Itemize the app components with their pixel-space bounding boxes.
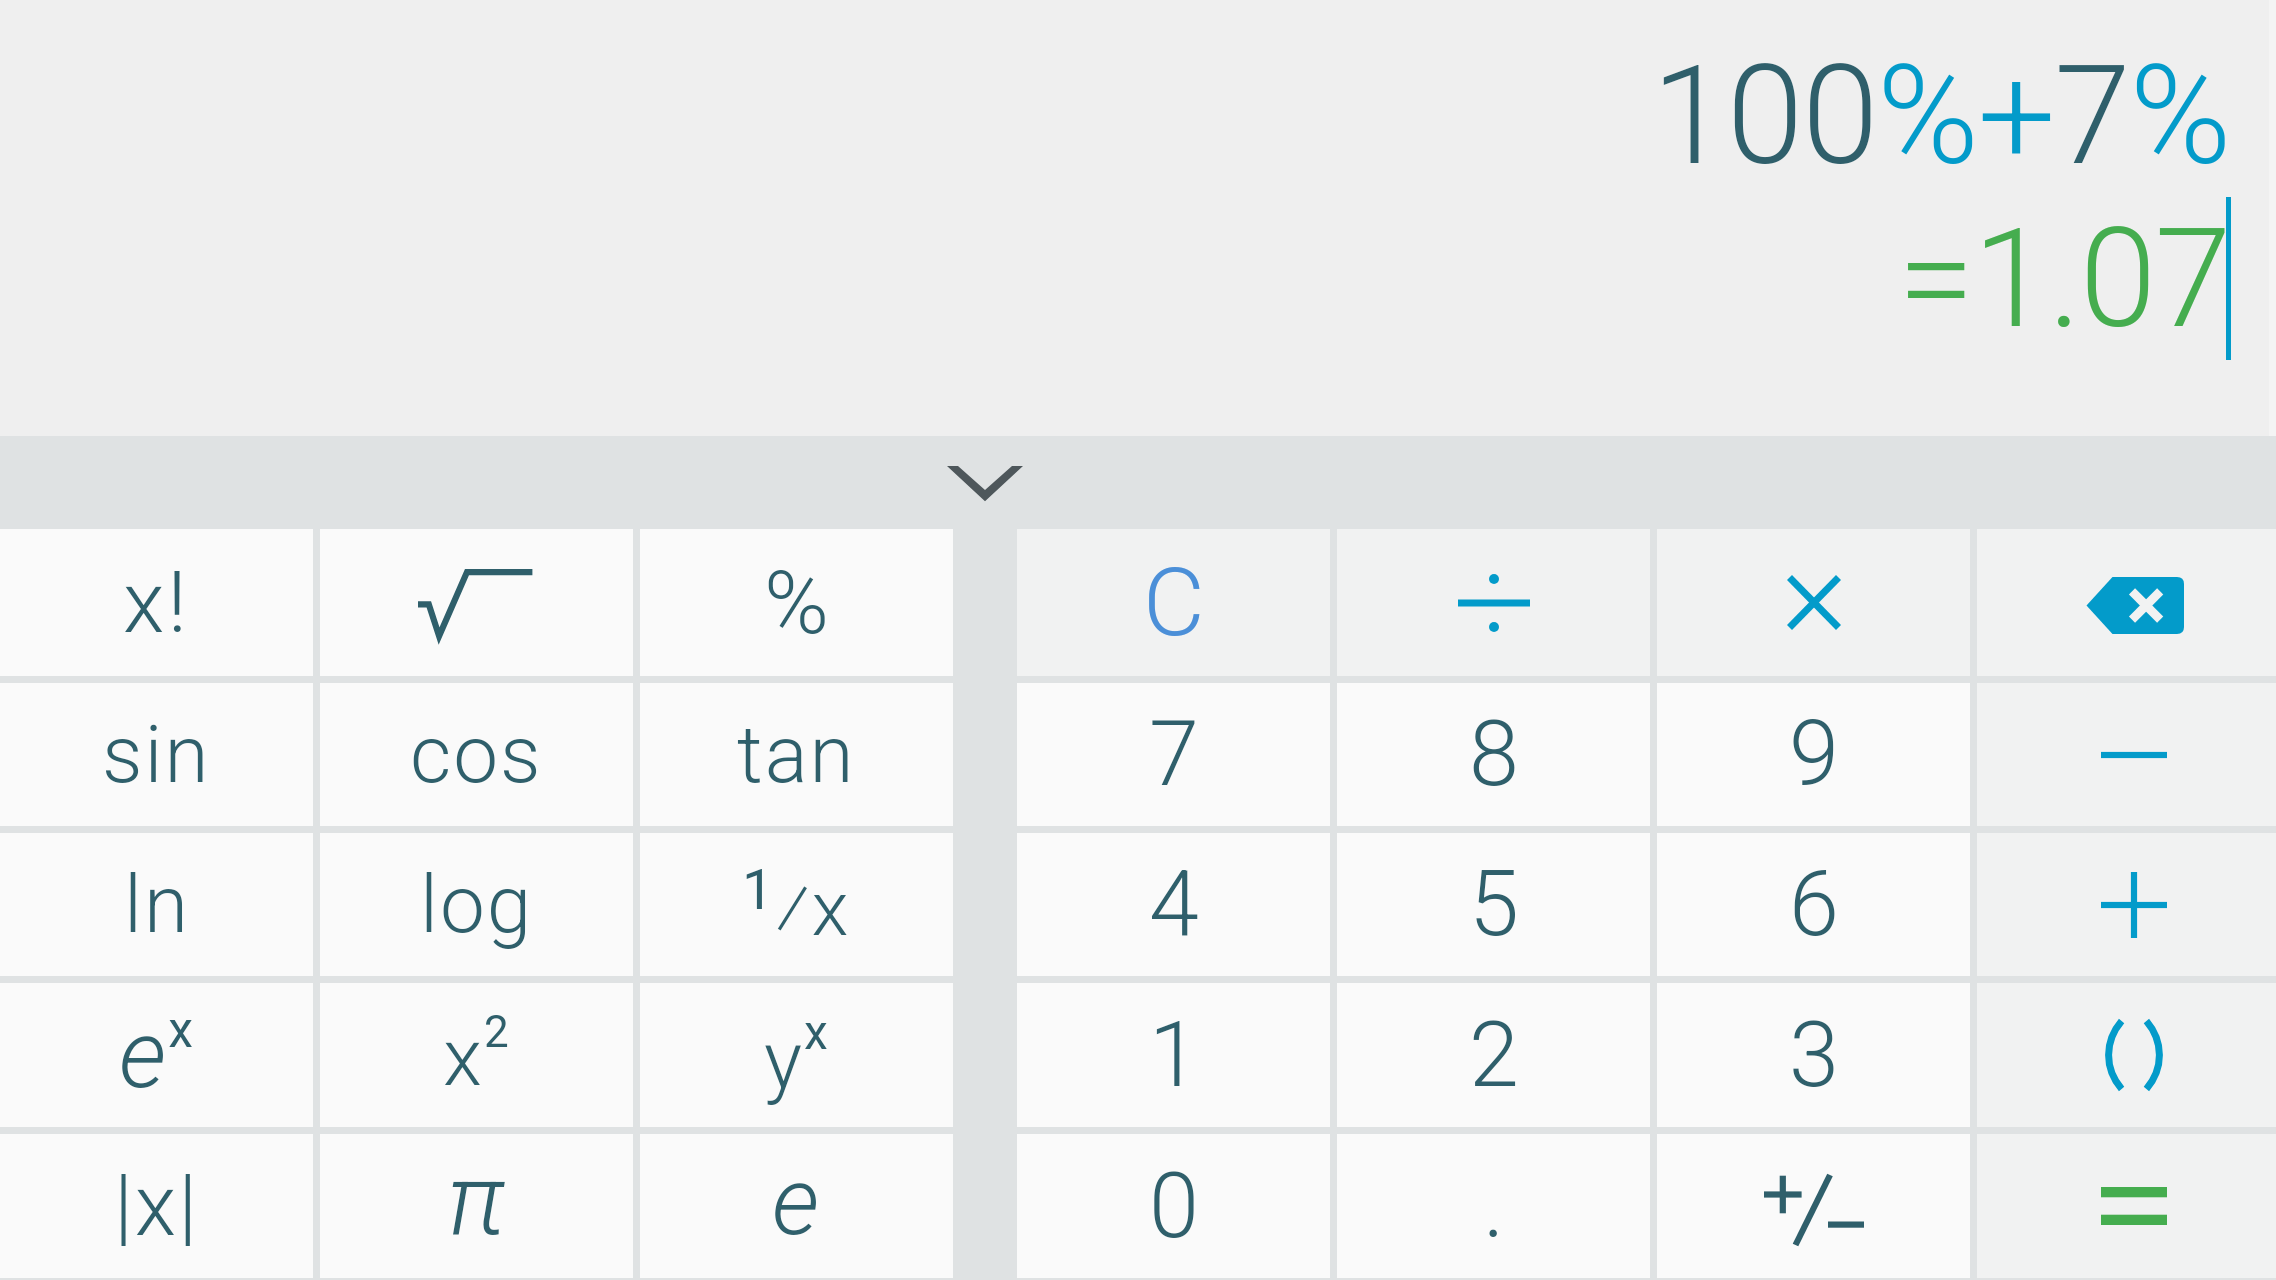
button[interactable]: Plus (1977, 833, 2276, 976)
button[interactable]: ln (0, 833, 313, 976)
button[interactable]: Percent (640, 529, 953, 676)
staticText: x2 (443, 1006, 511, 1104)
button[interactable]: 0 (1017, 1134, 1330, 1278)
staticText: 1 (1149, 1003, 1199, 1108)
button[interactable]: Square root (320, 529, 633, 676)
staticText: 8 (1469, 702, 1519, 807)
button[interactable]: 2 (1337, 983, 1650, 1127)
staticText: yx (764, 1004, 830, 1107)
button[interactable]: Decimal point (1337, 1134, 1650, 1278)
button[interactable]: One over x (640, 833, 953, 976)
button[interactable]: 7 (1017, 683, 1330, 826)
staticText: 6 (1789, 852, 1839, 957)
staticText: 3 (1789, 1003, 1839, 1108)
button[interactable]: Equals (1977, 1134, 2276, 1278)
staticText: sin (102, 708, 211, 802)
button[interactable]: Multiply (1657, 529, 1970, 676)
button[interactable]: 8 (1337, 683, 1650, 826)
button[interactable]: Collapse keypad (0, 436, 1017, 529)
button[interactable]: x squared (320, 983, 633, 1127)
staticText: C (1143, 547, 1205, 658)
staticText: 1⁄x (742, 857, 851, 953)
button[interactable]: Euler's number e (640, 1134, 953, 1278)
staticText: 4 (1149, 852, 1199, 957)
button[interactable]: 3 (1657, 983, 1970, 1127)
button[interactable]: 6 (1657, 833, 1970, 976)
button[interactable]: Pi (320, 1134, 633, 1278)
button[interactable]: Backspace (1977, 529, 2276, 676)
button[interactable]: 1 (1017, 983, 1330, 1127)
button[interactable]: Divide (1337, 529, 1650, 676)
staticText: . (1483, 1154, 1505, 1259)
button[interactable]: Factorial (0, 529, 313, 676)
button[interactable]: cos (320, 683, 633, 826)
staticText: =1.07 (1898, 198, 2230, 360)
staticText: ln (124, 858, 190, 952)
button[interactable]: e to the power of x (0, 983, 313, 1127)
staticText: 100%+7% (1651, 35, 2230, 197)
button[interactable]: Minus (1977, 683, 2276, 826)
button[interactable]: Parentheses (1977, 983, 2276, 1127)
staticText: 9 (1789, 702, 1839, 807)
button[interactable]: Absolute value (0, 1134, 313, 1278)
button[interactable]: Plus or minus (1657, 1134, 1970, 1278)
staticText: log (420, 858, 534, 952)
button[interactable]: Clear (1017, 529, 1330, 676)
staticText: 7 (1149, 702, 1199, 807)
staticText: e (772, 1147, 822, 1257)
staticText: cos (410, 708, 543, 802)
button[interactable]: y to the power of x (640, 983, 953, 1127)
button[interactable]: 9 (1657, 683, 1970, 826)
staticText: ex (119, 1000, 195, 1110)
button[interactable]: 4 (1017, 833, 1330, 976)
button[interactable]: tan (640, 683, 953, 826)
staticText: 0 (1149, 1154, 1199, 1259)
staticText: 5 (1469, 852, 1519, 957)
staticText: |x| (114, 1156, 199, 1256)
button[interactable]: 5 (1337, 833, 1650, 976)
staticText: x! (123, 553, 190, 653)
staticText: % (764, 551, 830, 654)
staticText: 2 (1469, 1003, 1519, 1108)
button[interactable]: log (320, 833, 633, 976)
button[interactable]: sin (0, 683, 313, 826)
staticText: tan (737, 708, 856, 802)
staticText: π (447, 1142, 507, 1259)
